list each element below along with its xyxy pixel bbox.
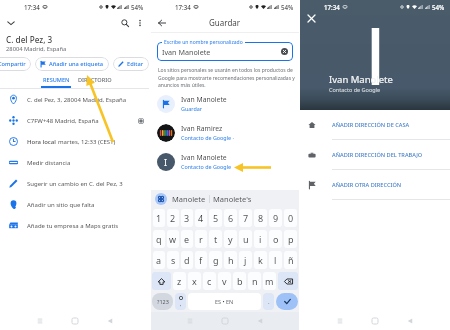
button[interactable]: Emoji [175,293,186,310]
staticText: Medir distancia [27,159,71,167]
button[interactable]: AÑADIR DIRECCIÓN DEL TRABAJO [300,140,450,169]
button[interactable]: n [248,272,261,290]
button[interactable]: . [263,293,274,310]
staticText: AÑADIR DIRECCIÓN DEL TRABAJO [332,151,423,159]
button[interactable]: Manolete's [213,194,252,204]
button[interactable]: f [195,251,207,269]
button[interactable]: Sugerir un cambio en C. del Pez, 3 [0,173,149,194]
button[interactable]: Clear [281,48,288,55]
button[interactable]: r [195,230,207,248]
staticText: ES • EN [215,298,234,305]
button[interactable]: u [239,230,252,248]
button[interactable]: Ivan Manolete [151,89,299,118]
button[interactable]: d [181,251,193,269]
button[interactable]: ?123 [152,293,173,310]
button[interactable]: Back [253,314,267,328]
button[interactable]: Collapse [3,15,19,31]
staticText: 9 [273,212,279,224]
button[interactable]: s [167,251,179,269]
button[interactable]: x [188,272,201,290]
button[interactable]: q [153,230,165,248]
staticText: l [274,254,277,266]
button[interactable]: 4 [195,209,207,227]
button[interactable]: Home [218,314,232,328]
button[interactable]: ñ [284,251,297,269]
button[interactable]: 5 [209,209,222,227]
button[interactable]: Back [155,16,169,30]
button[interactable]: 6 [224,209,237,227]
staticText: c [207,275,212,287]
button[interactable]: Close [304,11,318,25]
button[interactable]: Recents [33,314,47,328]
button[interactable]: Search [117,15,133,31]
button[interactable]: Home [368,314,382,328]
button[interactable]: e [181,230,193,248]
staticText: DIRECTORIO [78,76,112,84]
staticText: 8 [258,212,264,224]
button[interactable]: AÑADIR OTRA DIRECCIÓN [300,170,450,199]
staticText: Guardar [181,105,202,112]
button[interactable]: v [218,272,231,290]
button[interactable]: p [284,230,297,248]
button[interactable]: More options [133,16,147,30]
button[interactable]: l [269,251,282,269]
button[interactable]: 0 [284,209,297,227]
button[interactable]: Añadir un sitio que falta [0,194,149,215]
button[interactable]: Done [276,293,298,310]
button[interactable]: Backspace [278,272,298,290]
button[interactable]: i [254,230,267,248]
button[interactable]: k [254,251,267,269]
button[interactable]: Hora local [0,131,149,152]
button[interactable]: w [167,230,179,248]
button[interactable]: 8 [254,209,267,227]
button[interactable]: DIRECTORIO [78,72,112,88]
staticText: Los sitios personales se usarán en todos… [158,67,296,88]
button[interactable]: Keyboard options [155,193,167,205]
staticText: Editar [127,60,144,68]
button[interactable]: 1 [153,209,165,227]
button[interactable]: c [203,272,216,290]
button[interactable]: Back [403,314,417,328]
button[interactable]: ES • EN [188,293,261,310]
button[interactable]: j [239,251,252,269]
button[interactable]: m [263,272,276,290]
button[interactable]: a [153,251,165,269]
button[interactable]: 7 [239,209,252,227]
staticText: ?123 [157,298,169,305]
button[interactable]: y [224,230,237,248]
button[interactable]: Home [68,314,82,328]
button[interactable]: 3 [181,209,193,227]
button[interactable]: Recents [183,314,197,328]
staticText: 17:34 [24,3,40,11]
staticText: w [169,233,177,245]
staticText: Contacto de Google [181,163,232,170]
button[interactable]: Medir distancia [0,152,149,173]
button[interactable]: z [173,272,186,290]
button[interactable]: Shift [152,272,171,290]
button[interactable]: Manolete [172,194,206,204]
button[interactable]: 2 [167,209,179,227]
button[interactable]: Ivan Manolete [157,42,293,61]
staticText: , [180,300,182,307]
button[interactable]: Compartir [0,57,31,71]
button[interactable]: Recents [333,314,347,328]
button[interactable]: t [209,230,222,248]
button[interactable]: Ivan Ramirez [151,118,299,147]
staticText: 2 [170,212,176,224]
button[interactable]: I [151,147,299,176]
button[interactable]: o [269,230,282,248]
button[interactable]: Back [103,314,117,328]
staticText: s [171,254,176,266]
button[interactable]: Añadir una etiqueta [35,57,109,71]
button[interactable]: AÑADIR DIRECCIÓN DE CASA [300,110,450,139]
button[interactable]: C7FW+48 Madrid, España [0,110,149,131]
button[interactable]: g [209,251,222,269]
button[interactable]: Añade tu empresa a Maps gratis [0,215,149,236]
button[interactable]: h [224,251,237,269]
button[interactable]: C. del Pez, 3, 28004 Madrid, España [0,89,149,110]
button[interactable]: Editar [113,57,149,71]
button[interactable]: RESUMEN [41,72,71,88]
button[interactable]: 9 [269,209,282,227]
staticText: Ivan Ramirez [181,124,223,133]
button[interactable]: b [233,272,246,290]
